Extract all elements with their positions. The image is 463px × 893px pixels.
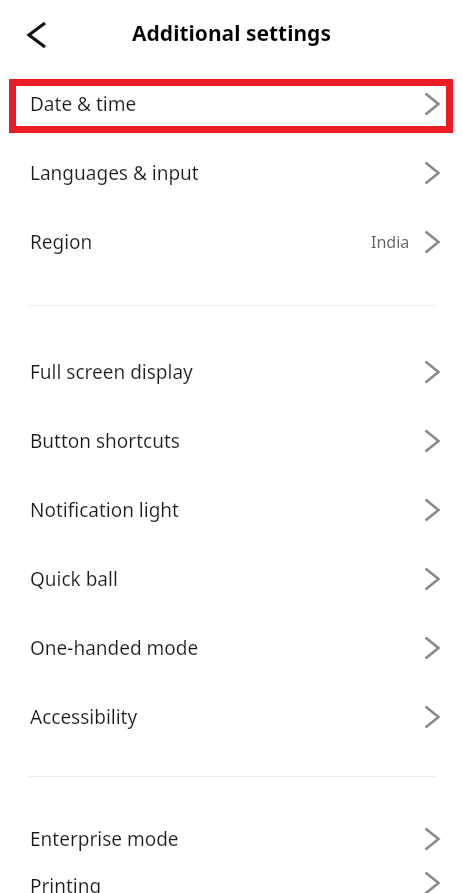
staticText: India — [371, 231, 410, 253]
staticText: Printing — [30, 873, 102, 893]
staticText: Enterprise mode — [30, 826, 179, 852]
button[interactable]: Printing — [0, 873, 463, 893]
staticText: One-handed mode — [30, 635, 199, 661]
button[interactable]: Date & time — [0, 69, 463, 138]
button[interactable]: Languages & input — [0, 138, 463, 207]
button[interactable]: One-handed mode — [0, 613, 463, 682]
staticText: Quick ball — [30, 566, 118, 592]
button[interactable]: Full screen display — [0, 337, 463, 406]
button[interactable]: Back — [13, 11, 61, 59]
staticText: Region — [30, 229, 93, 255]
button[interactable]: Notification light — [0, 475, 463, 544]
staticText: Languages & input — [30, 160, 199, 186]
button[interactable]: Enterprise mode — [0, 804, 463, 873]
button[interactable]: Quick ball — [0, 544, 463, 613]
staticText: Button shortcuts — [30, 428, 180, 454]
staticText: Accessibility — [30, 704, 138, 730]
button[interactable]: Button shortcuts — [0, 406, 463, 475]
staticText: Notification light — [30, 497, 179, 523]
staticText: Full screen display — [30, 359, 193, 385]
button[interactable]: Accessibility — [0, 682, 463, 751]
staticText: Additional settings — [0, 19, 463, 48]
button[interactable]: Region — [0, 207, 463, 276]
staticText: Date & time — [30, 91, 137, 117]
